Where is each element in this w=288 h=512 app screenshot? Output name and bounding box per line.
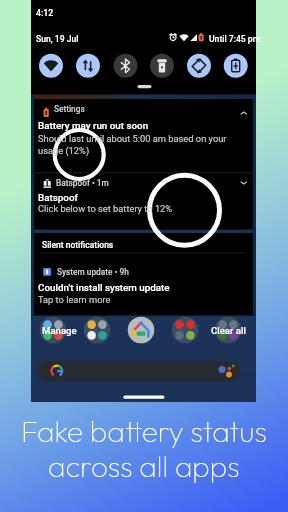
staticText: Batspoof • 1m [56, 178, 109, 188]
button[interactable]: Manage [36, 319, 71, 330]
staticText: usage (12%) [38, 145, 90, 156]
staticText: Batspoof [38, 192, 78, 203]
staticText: Fake battery status [21, 412, 267, 449]
staticText: Click below to set battery to 12% [38, 203, 173, 214]
staticText: Silent notifications [42, 240, 114, 250]
staticText: Couldn't install system update [38, 282, 170, 293]
button[interactable]: Clear all [205, 319, 240, 330]
staticText: Clear all [211, 325, 246, 336]
staticText: Until 7:45 pm [209, 34, 261, 44]
staticText: Manage [42, 325, 77, 336]
staticText: Tap to learn more [38, 294, 111, 305]
staticText: Sun, 19 Jul [36, 34, 79, 44]
staticText: Battery may run out soon [38, 120, 149, 131]
staticText: System update • 9h [57, 267, 129, 277]
staticText: Settings [54, 104, 85, 114]
staticText: Should last until about 5:00 am based on… [38, 133, 227, 144]
staticText: 4:12 [36, 8, 54, 18]
staticText: across all apps [48, 447, 240, 484]
